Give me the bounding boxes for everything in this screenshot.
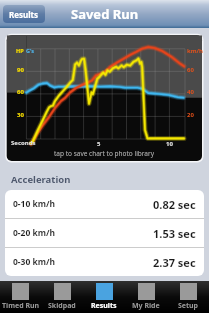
- staticText: 1.53 sec: [153, 226, 196, 241]
- staticText: G's: [26, 47, 35, 54]
- button[interactable]: My Ride: [125, 281, 167, 313]
- staticText: 5: [97, 140, 101, 148]
- staticText: Results: [9, 9, 39, 20]
- staticText: Skidpad: [48, 301, 76, 311]
- staticText: 0-20 km/h: [13, 227, 56, 239]
- staticText: Seconds: [11, 139, 36, 147]
- staticText: Setup: [178, 301, 199, 311]
- button[interactable]: Skidpad: [41, 281, 83, 313]
- staticText: 20: [187, 111, 194, 119]
- staticText: Results: [91, 301, 117, 311]
- button[interactable]: Results: [3, 5, 45, 23]
- button[interactable]: 0-20 km/h: [5, 219, 204, 248]
- button[interactable]: Timed Run: [0, 281, 41, 313]
- staticText: 10: [166, 140, 173, 148]
- staticText: Acceleration: [11, 173, 71, 186]
- staticText: tap to save chart to photo library: [54, 149, 155, 158]
- staticText: 60: [17, 88, 24, 96]
- staticText: 0.82 sec: [153, 197, 196, 212]
- staticText: 30: [17, 111, 24, 119]
- button[interactable]: 0-10 km/h: [5, 190, 204, 219]
- staticText: 0-10 km/h: [13, 198, 56, 210]
- staticText: HP: [16, 47, 24, 54]
- staticText: Saved Run: [71, 5, 139, 23]
- button[interactable]: Setup: [167, 281, 209, 313]
- staticText: 0-30 km/h: [13, 256, 56, 268]
- staticText: 40: [187, 88, 194, 96]
- button[interactable]: 0-30 km/h: [5, 248, 204, 276]
- staticText: My Ride: [132, 301, 160, 311]
- staticText: 60: [187, 66, 194, 74]
- staticText: Timed Run: [2, 301, 40, 311]
- staticText: km/h: [187, 47, 203, 55]
- staticText: 2.37 sec: [153, 255, 196, 270]
- button[interactable]: Results: [83, 281, 125, 313]
- staticText: 90: [17, 66, 24, 74]
